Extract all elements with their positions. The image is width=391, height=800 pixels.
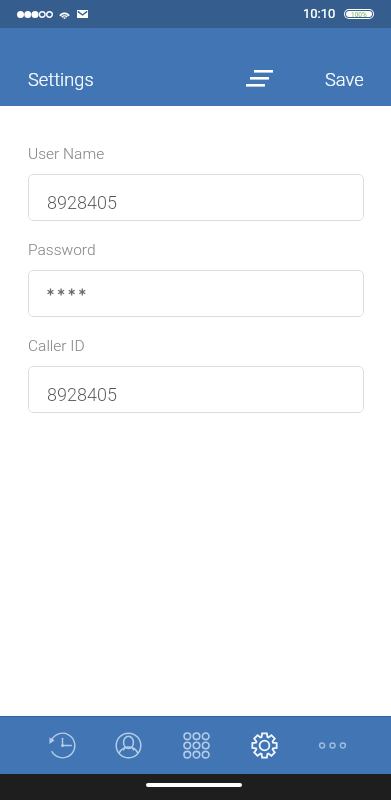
button[interactable]: Save — [314, 62, 375, 97]
button[interactable] — [28, 270, 364, 317]
staticText: Save — [325, 69, 364, 90]
button[interactable]: Dialpad — [166, 716, 226, 774]
button[interactable]: Contacts — [98, 716, 158, 774]
staticText: Password — [28, 241, 96, 259]
staticText: User Name — [28, 145, 105, 163]
staticText: Caller ID — [28, 337, 85, 355]
button[interactable]: 8928405 — [28, 366, 364, 413]
staticText: 8928405 — [47, 192, 117, 213]
staticText: 10:10 — [303, 6, 336, 21]
button[interactable]: Settings — [17, 62, 105, 97]
button[interactable]: Recent calls — [32, 716, 92, 774]
button[interactable]: More — [302, 716, 362, 774]
staticText: 8928405 — [47, 384, 117, 405]
button[interactable]: 8928405 — [28, 174, 364, 221]
staticText: Settings — [28, 69, 94, 90]
button[interactable]: Sort — [234, 59, 286, 99]
button[interactable]: Settings — [234, 716, 294, 774]
staticText: 100% — [351, 11, 367, 17]
